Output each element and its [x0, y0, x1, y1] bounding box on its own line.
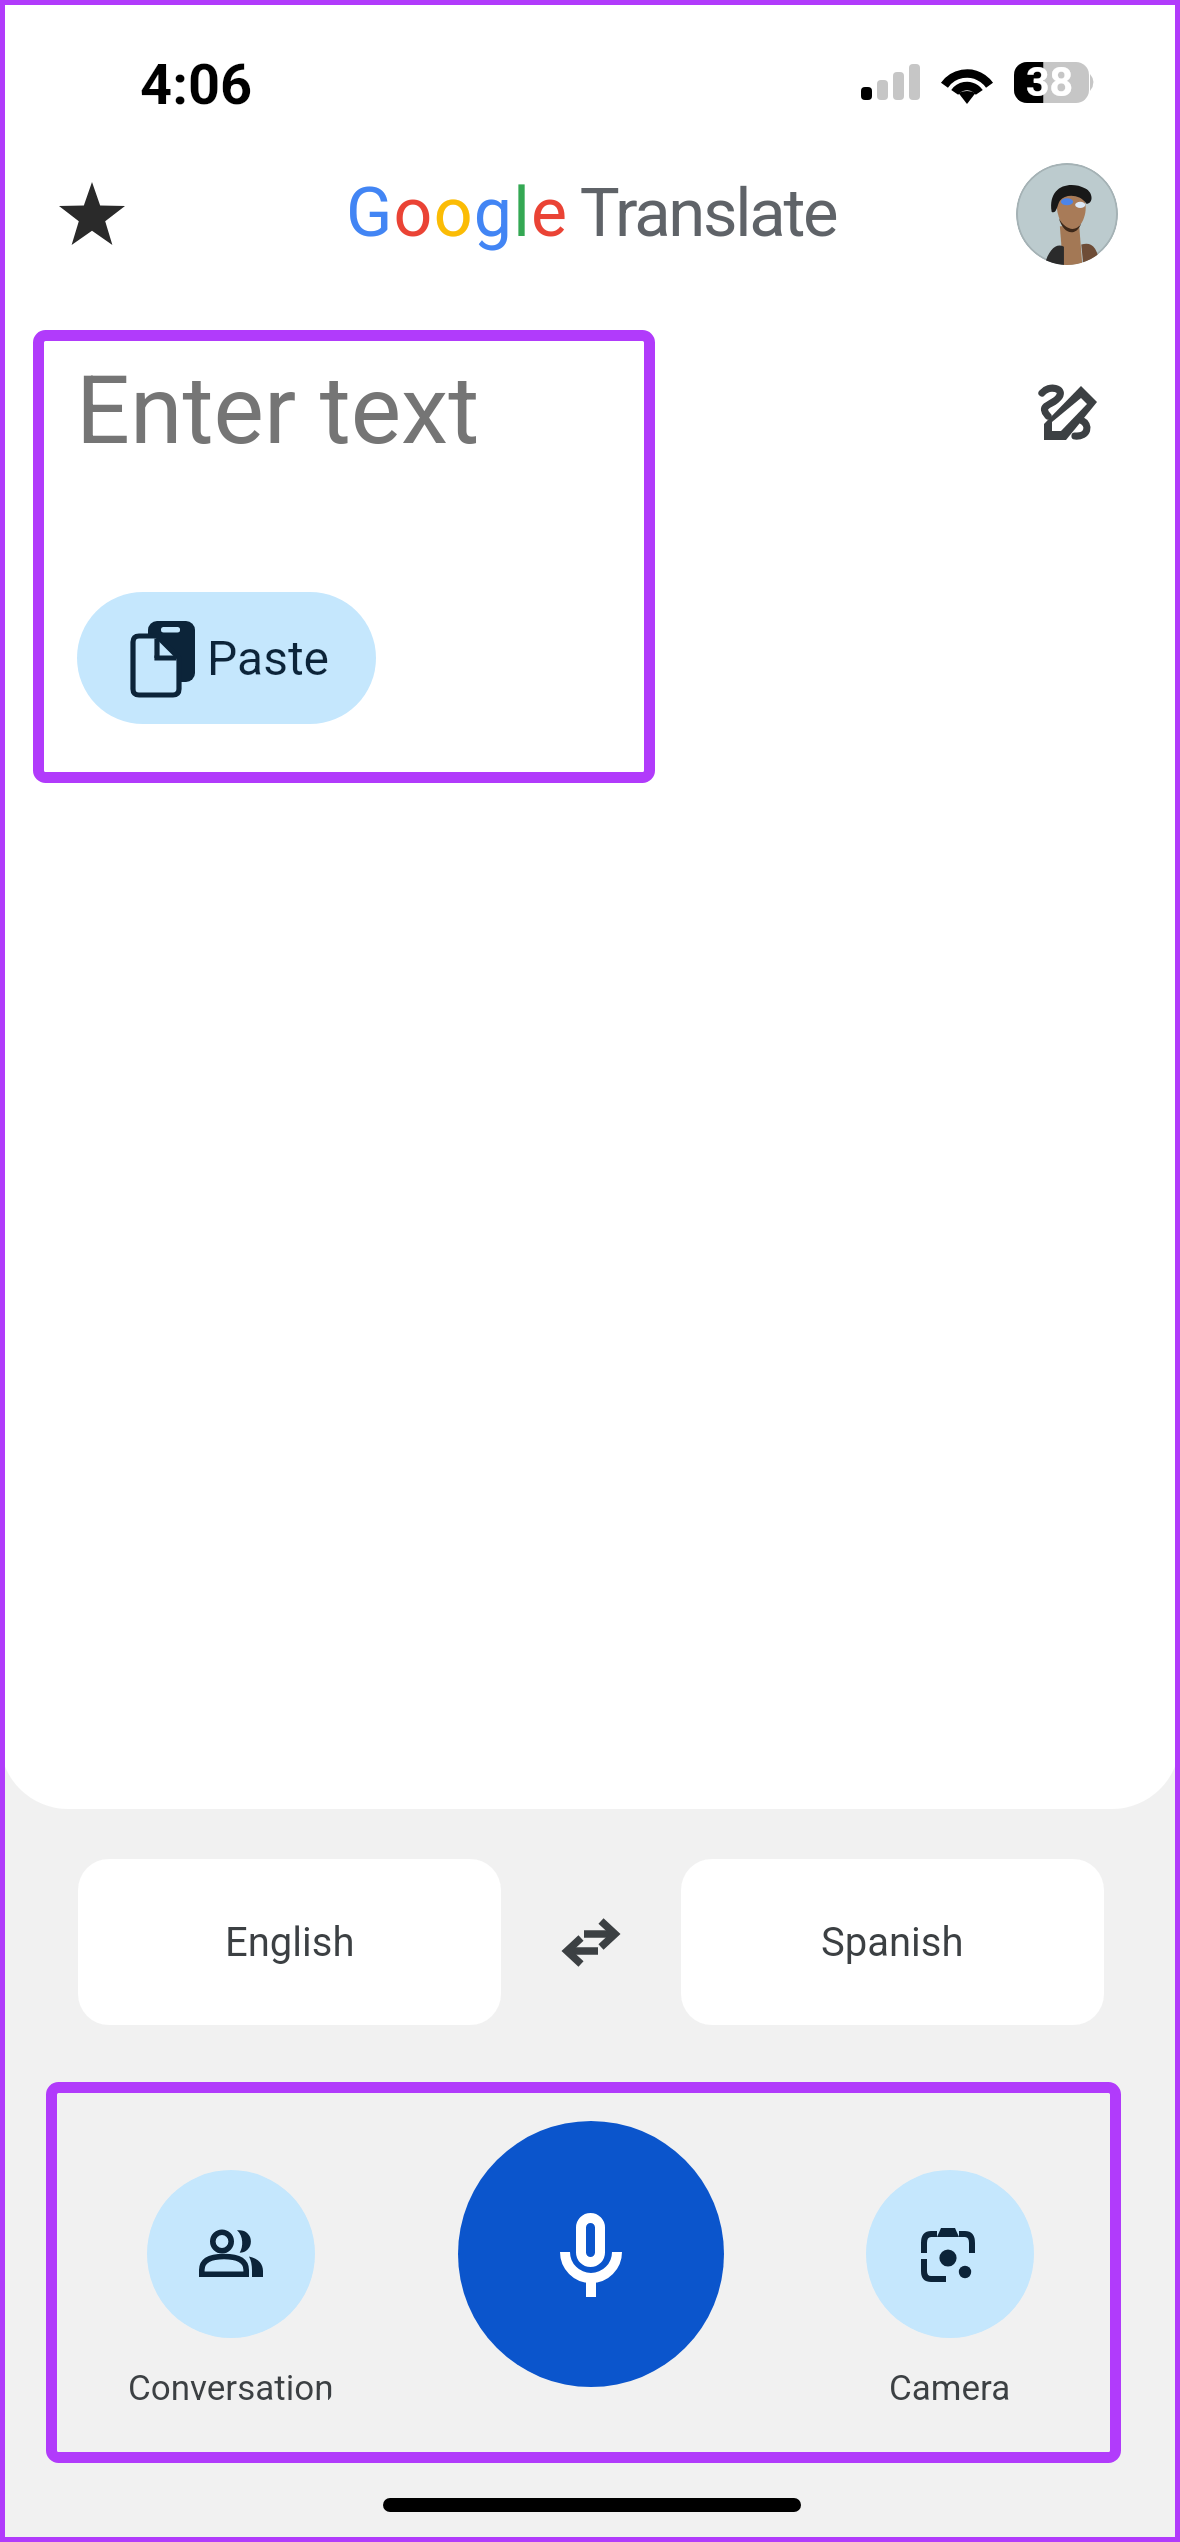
staticText: Conversation [128, 2368, 334, 2409]
button[interactable]: Paste [77, 592, 376, 724]
button[interactable]: Swap languages [501, 1859, 681, 2025]
staticText: Camera [889, 2368, 1011, 2409]
button[interactable]: English [78, 1859, 501, 2025]
button[interactable]: Spanish [681, 1859, 1104, 2025]
staticText: Paste [207, 630, 330, 686]
button[interactable]: Saved [37, 158, 147, 268]
staticText: Enter text [76, 355, 480, 466]
staticText: Spanish [821, 1919, 964, 1966]
button[interactable]: Conversation [128, 2170, 334, 2409]
staticText: Google Translate [346, 173, 837, 253]
staticText: 38 [1026, 58, 1074, 106]
button[interactable]: Microphone [458, 2121, 724, 2387]
button[interactable]: Google Translate [346, 168, 837, 258]
button[interactable]: Camera [866, 2170, 1034, 2409]
staticText: 4:06 [140, 52, 253, 118]
button[interactable]: Account [1016, 163, 1118, 265]
button[interactable]: Handwriting [1003, 347, 1135, 479]
staticText: English [225, 1919, 355, 1966]
